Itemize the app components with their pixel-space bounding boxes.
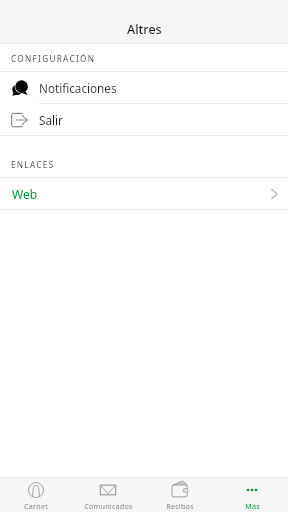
button[interactable]: Notificaciones bbox=[0, 72, 288, 103]
button[interactable]: Comunicados bbox=[72, 478, 144, 512]
other: Carnet bbox=[28, 482, 44, 498]
other: Web bbox=[266, 186, 282, 202]
button[interactable]: Salir bbox=[0, 104, 288, 135]
staticText: Recibos bbox=[166, 501, 194, 511]
button[interactable]: Carnet bbox=[0, 478, 72, 512]
staticText: CONFIGURACIÓN bbox=[11, 53, 96, 64]
staticText: Carnet bbox=[24, 501, 48, 511]
button[interactable]: Más bbox=[216, 478, 288, 512]
other: Más bbox=[244, 482, 260, 498]
staticText: Notificaciones bbox=[39, 80, 117, 96]
staticText: Altres bbox=[127, 21, 162, 38]
staticText: ENLACES bbox=[11, 159, 55, 170]
button[interactable]: Recibos bbox=[144, 478, 216, 512]
staticText: Web bbox=[12, 186, 38, 202]
staticText: Salir bbox=[39, 112, 63, 128]
other: Comunicados bbox=[100, 482, 116, 498]
button[interactable]: Web bbox=[0, 178, 288, 209]
staticText: Más bbox=[245, 501, 260, 511]
other: Recibos bbox=[172, 481, 188, 497]
staticText: Comunicados bbox=[84, 501, 133, 511]
